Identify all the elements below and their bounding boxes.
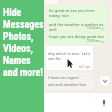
staticText: Names — [3, 55, 31, 67]
staticText: Messages, — [3, 19, 44, 31]
staticText: So great to see you here today, nice — [49, 8, 107, 18]
staticText: Photos, — [3, 31, 34, 43]
staticText: hope you are doing great too — [49, 34, 104, 39]
staticText: I have an urgent — [48, 75, 79, 80]
button[interactable]: Scroll to bottom — [100, 76, 110, 86]
staticText: Videos, — [3, 43, 33, 55]
staticText: 10:26 am — [87, 39, 100, 43]
button[interactable]: Record voice message — [99, 98, 109, 108]
staticText: day which is nice. Let's see for — [48, 51, 93, 61]
button[interactable]: day which is nice. Let's see for — [46, 46, 93, 70]
button[interactable]: hope you are doing great too — [47, 32, 107, 44]
staticText: Hide — [3, 7, 22, 19]
staticText: 4:21 pm — [79, 65, 91, 69]
staticText: and the weather is perfect as well — [49, 22, 107, 31]
button[interactable]: So great to see you here today, nice — [47, 5, 107, 31]
staticText: 10:24 am — [87, 26, 100, 30]
staticText: ask and another line — [48, 82, 87, 87]
button[interactable]: I have an urgent — [46, 73, 93, 90]
staticText: and more! — [3, 67, 43, 79]
